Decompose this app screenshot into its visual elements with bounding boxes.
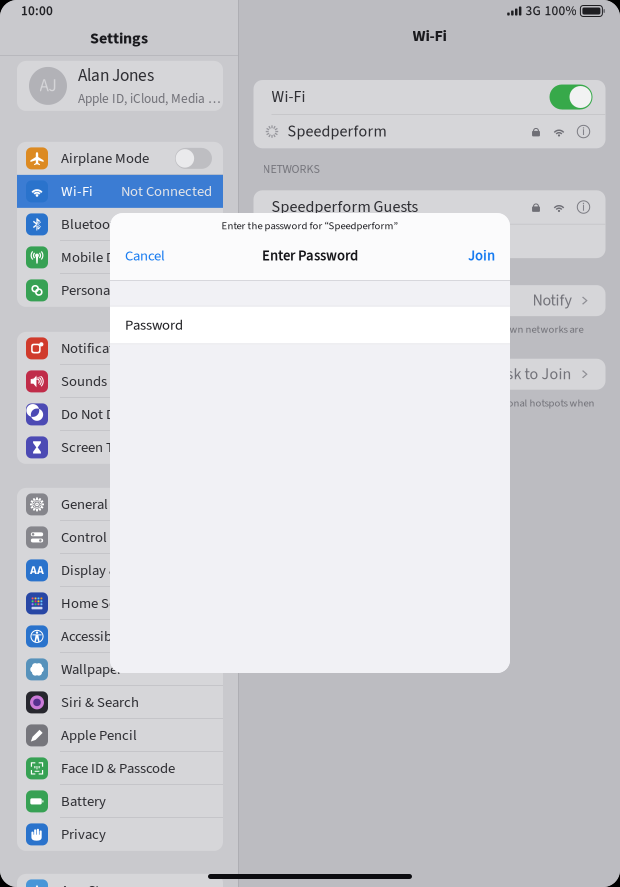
staticText: Mobile Data bbox=[61, 247, 134, 268]
button[interactable]: Other… bbox=[253, 225, 605, 258]
button[interactable]: General bbox=[17, 488, 223, 521]
staticText: AA bbox=[30, 562, 44, 579]
staticText: Apple Pencil bbox=[61, 725, 137, 746]
staticText: Speedperform Guests bbox=[271, 196, 418, 218]
button[interactable]: Accessibility bbox=[17, 620, 223, 653]
staticText: Display & Brightness bbox=[61, 560, 186, 581]
staticText: Bluetooth bbox=[61, 214, 123, 235]
button[interactable]: Control Centre bbox=[17, 521, 223, 554]
staticText: Control Centre bbox=[61, 527, 150, 548]
staticText: Allow this device to automatically disco… bbox=[262, 396, 594, 425]
staticText: Ask to Join Networks bbox=[271, 289, 412, 312]
button[interactable]: Ask to Join Networks bbox=[253, 285, 605, 316]
staticText: Do Not Disturb bbox=[61, 404, 151, 425]
staticText: Privacy bbox=[61, 824, 106, 845]
staticText: Other… bbox=[271, 230, 324, 252]
button[interactable]: Face ID & Passcode bbox=[17, 752, 223, 785]
staticText: 100% bbox=[544, 2, 576, 20]
staticText: Home Screen & Dock bbox=[61, 593, 189, 614]
staticText: Enter the password for “Speedperform” bbox=[221, 219, 398, 233]
button[interactable]: Auto-Join Hotspot bbox=[253, 359, 605, 390]
staticText: Notify bbox=[532, 289, 571, 312]
staticText: Not Connected bbox=[121, 181, 212, 202]
staticText: Face ID & Passcode bbox=[61, 758, 175, 779]
button[interactable]: Screen Time bbox=[17, 431, 223, 464]
staticText: Sounds bbox=[61, 371, 107, 392]
staticText: Settings bbox=[90, 27, 148, 50]
staticText: Known networks will be joined automatica… bbox=[262, 322, 583, 352]
staticText: Airplane Mode bbox=[61, 148, 149, 169]
button[interactable]: Password bbox=[110, 307, 510, 344]
staticText: Siri & Search bbox=[61, 692, 139, 713]
staticText: 3G bbox=[525, 2, 540, 20]
staticText: Wi-Fi bbox=[61, 181, 93, 202]
button[interactable]: Wallpaper bbox=[17, 653, 223, 686]
staticText: AJ bbox=[39, 74, 56, 98]
button[interactable]: Do Not Disturb bbox=[17, 398, 223, 431]
staticText: Cancel bbox=[125, 246, 165, 266]
button[interactable]: Mobile Data bbox=[17, 241, 223, 274]
button[interactable]: AJ bbox=[17, 61, 223, 111]
button[interactable]: Personal Hotspot bbox=[17, 274, 223, 307]
staticText: Speedperform bbox=[287, 120, 386, 143]
button[interactable]: Siri & Search bbox=[17, 686, 223, 719]
staticText: App Store bbox=[61, 880, 120, 887]
staticText: General bbox=[61, 494, 108, 515]
staticText: Apple ID, iCloud, Media &… bbox=[78, 90, 223, 108]
button[interactable]: Cancel bbox=[110, 239, 177, 273]
staticText: Password bbox=[125, 315, 183, 335]
staticText: Alan Jones bbox=[78, 64, 154, 88]
staticText: Enter Password bbox=[262, 246, 358, 266]
button[interactable]: Apple Pencil bbox=[17, 719, 223, 752]
staticText: Join bbox=[468, 246, 495, 266]
button[interactable]: Bluetooth bbox=[17, 208, 223, 241]
button[interactable]: Battery bbox=[17, 785, 223, 818]
staticText: i bbox=[582, 123, 585, 140]
staticText: Personal Hotspot bbox=[61, 280, 167, 301]
button[interactable]: Airplane Mode bbox=[17, 142, 223, 175]
staticText: Wi-Fi bbox=[271, 86, 305, 108]
button[interactable]: App Store bbox=[17, 874, 223, 887]
button[interactable]: Notifications bbox=[17, 332, 223, 365]
button[interactable]: AA bbox=[17, 554, 223, 587]
staticText: Battery bbox=[61, 791, 106, 812]
staticText: Wi-Fi bbox=[412, 25, 446, 47]
button[interactable]: Wi-Fi bbox=[17, 175, 223, 208]
staticText: Ask to Join bbox=[497, 363, 571, 385]
staticText: Accessibility bbox=[61, 626, 136, 647]
staticText: i bbox=[582, 199, 585, 215]
button[interactable]: Sounds bbox=[17, 365, 223, 398]
button[interactable]: Privacy bbox=[17, 818, 223, 851]
staticText: NETWORKS bbox=[262, 161, 319, 178]
staticText: Notifications bbox=[61, 338, 140, 359]
staticText: 10:00 bbox=[21, 2, 53, 20]
button[interactable]: Speedperform Guests bbox=[253, 190, 605, 224]
staticText: Screen Time bbox=[61, 437, 137, 458]
staticText: Wallpaper bbox=[61, 659, 122, 680]
button[interactable]: Join bbox=[456, 239, 510, 273]
button[interactable]: Home Screen & Dock bbox=[17, 587, 223, 620]
